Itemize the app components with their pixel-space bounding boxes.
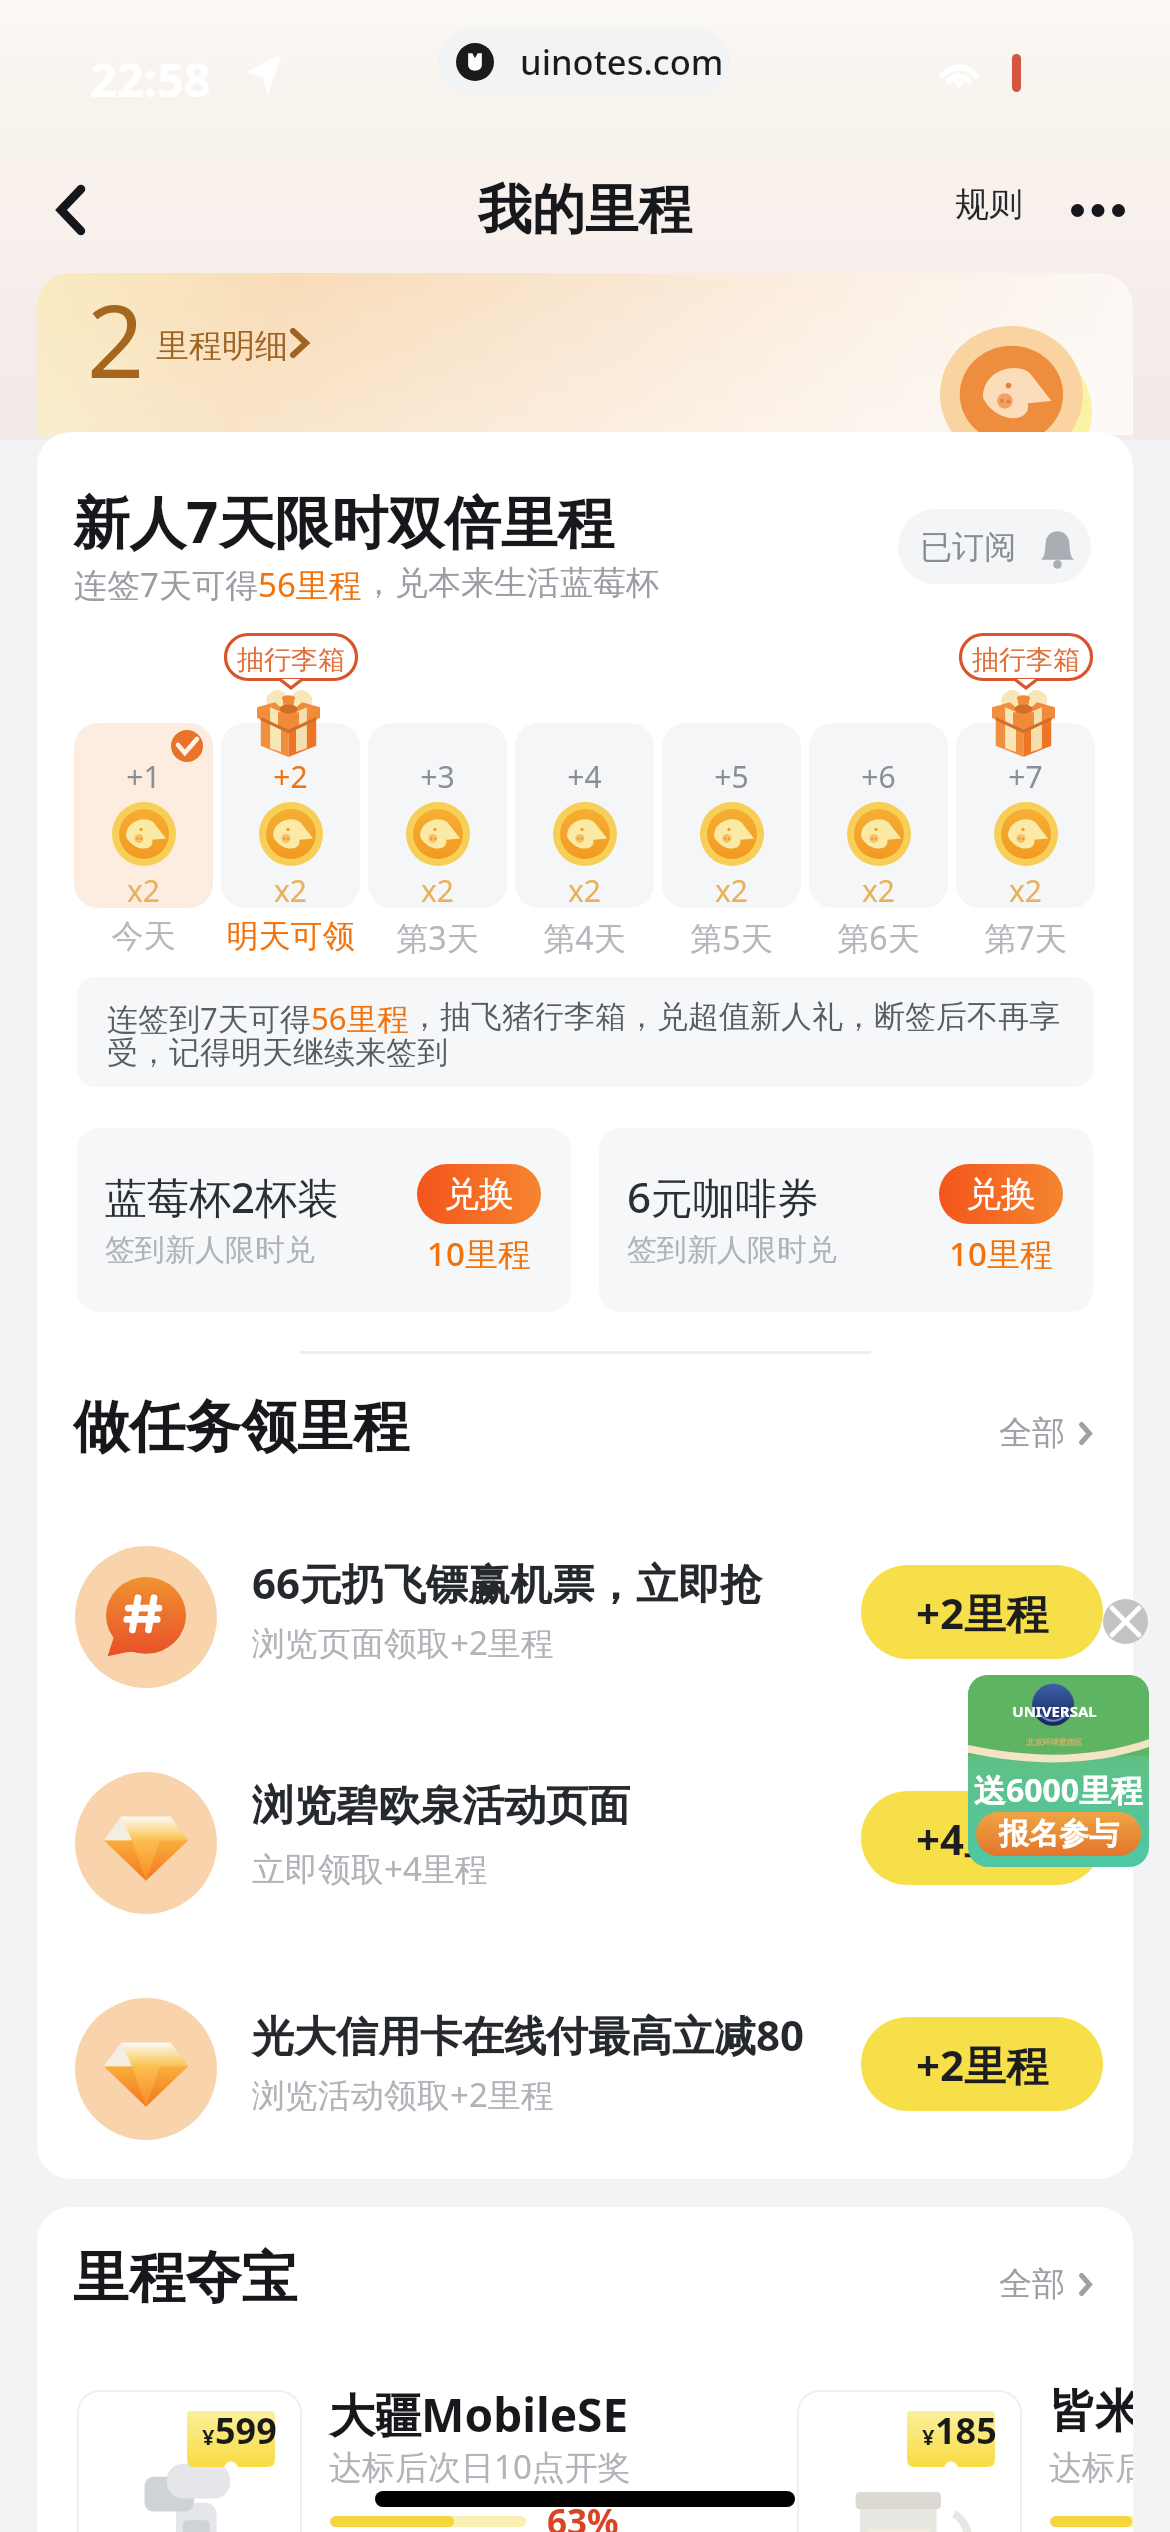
staticText: +7 (956, 756, 1095, 797)
staticText: 今天 (74, 916, 213, 956)
staticText: 北京环球度假区 (968, 1737, 1145, 1747)
button[interactable]: +4 (515, 723, 654, 908)
staticText: 浏览页面领取+2里程 (252, 1620, 554, 1665)
staticText: ¥ (202, 2421, 215, 2451)
staticText: 签到新人限时兑 (627, 1231, 837, 1269)
staticText: 第5天 (662, 916, 801, 960)
staticText: x2 (809, 870, 948, 908)
staticText: 明天可领 (221, 916, 360, 956)
button[interactable]: +6 (809, 723, 948, 908)
button[interactable]: 6元咖啡券 (599, 1128, 1093, 1312)
button[interactable]: 规则 (951, 177, 1027, 232)
staticText: 大疆MobileSE (329, 2383, 629, 2446)
staticText: 63% (547, 2498, 619, 2532)
button[interactable]: ¥ (77, 2390, 302, 2532)
staticText: +2里程 (916, 2036, 1049, 2093)
button[interactable]: 66元扔飞镖赢机票，立即抢 (37, 1546, 1133, 1688)
button[interactable]: +4里程 (861, 1791, 1103, 1885)
staticText: 连签到7天可得 (107, 997, 311, 1039)
staticText: 抽行李箱 (224, 643, 358, 677)
staticText: 里程夺宝 (73, 2243, 297, 2314)
staticText: ，抽飞猪行李箱，兑超值新人礼，断签后不再享 (409, 997, 1060, 1036)
staticText: 达标后次日10点开奖 (329, 2444, 631, 2489)
staticText: 兑换 (966, 1172, 1036, 1216)
staticText: +2里程 (916, 1584, 1049, 1641)
button[interactable]: ¥ (797, 2390, 1022, 2532)
button[interactable]: Back (31, 170, 111, 250)
staticText: ¥ (922, 2421, 935, 2451)
staticText: 送6000里程 (971, 1768, 1146, 1812)
staticText: 56里程 (311, 997, 409, 1039)
staticText: 10里程 (417, 1231, 541, 1276)
staticText: 已订阅 (920, 527, 1016, 567)
staticText: x2 (368, 870, 507, 908)
staticText: +1 (74, 756, 213, 797)
button[interactable]: 浏览碧欧泉活动页面 (37, 1772, 1133, 1914)
staticText: 10里程 (939, 1231, 1063, 1276)
staticText: x2 (515, 870, 654, 908)
staticText: 连签7天可得 (74, 562, 258, 607)
button[interactable]: 全部 (989, 2255, 1100, 2313)
button[interactable]: +1 (74, 723, 213, 908)
button[interactable]: 已订阅 (898, 509, 1091, 584)
staticText: +6 (809, 756, 948, 797)
button[interactable]: Close ad (1103, 1599, 1148, 1644)
staticText: 第6天 (809, 916, 948, 960)
staticText: 66元扔飞镖赢机票，立即抢 (252, 1554, 763, 1611)
staticText: x2 (662, 870, 801, 908)
staticText: x2 (221, 870, 360, 908)
staticText: 全部 (999, 1412, 1065, 1454)
staticText: +4 (515, 756, 654, 797)
staticText: 规则 (955, 183, 1023, 226)
staticText: +3 (368, 756, 507, 797)
staticText: +5 (662, 756, 801, 797)
staticText: 56里程 (258, 562, 362, 607)
staticText: 蓝莓杯2杯装 (105, 1168, 340, 1225)
staticText: 达标后次日10点开奖 (1049, 2444, 1133, 2489)
staticText: 22:58 (90, 47, 211, 111)
staticText: 我的里程 (478, 176, 692, 243)
staticText: 立即领取+4里程 (252, 1846, 488, 1891)
staticText: 抽行李箱 (959, 643, 1093, 677)
staticText: 签到新人限时兑 (105, 1231, 315, 1269)
button[interactable]: 蓝莓杯2杯装 (77, 1128, 571, 1312)
button[interactable]: +3 (368, 723, 507, 908)
staticText: +4里程 (916, 1810, 1049, 1867)
staticText: 第7天 (956, 916, 1095, 960)
staticText: 第3天 (368, 916, 507, 960)
button[interactable]: +5 (662, 723, 801, 908)
staticText: 第4天 (515, 916, 654, 960)
staticText: 浏览活动领取+2里程 (252, 2072, 554, 2117)
staticText: x2 (956, 870, 1095, 908)
staticText: 做任务领里程 (73, 1392, 409, 1463)
staticText: 新人7天限时双倍里程 (73, 483, 614, 560)
staticText: 受，记得明天继续来签到 (107, 1033, 448, 1072)
button[interactable]: 兑换 (417, 1164, 541, 1224)
button[interactable]: More options (1069, 186, 1127, 234)
staticText: x2 (74, 870, 213, 908)
staticText: 里程明细 (156, 325, 288, 367)
button[interactable]: +2里程 (861, 1565, 1103, 1659)
button[interactable]: +2 (221, 723, 360, 908)
staticText: 兑换 (444, 1172, 514, 1216)
staticText: +2 (221, 756, 360, 797)
button[interactable]: UNIVERSAL (968, 1675, 1149, 1867)
button[interactable]: 光大信用卡在线付最高立减80 (37, 1998, 1133, 2140)
staticText: 光大信用卡在线付最高立减80 (252, 2006, 805, 2063)
staticText: 599 (215, 2406, 277, 2455)
staticText: 全部 (999, 2263, 1065, 2305)
staticText: uinotes.com (520, 38, 724, 85)
button[interactable]: 全部 (989, 1404, 1100, 1462)
staticText: 浏览碧欧泉活动页面 (252, 1780, 630, 1833)
staticText: 6元咖啡券 (627, 1168, 820, 1225)
staticText: 报名参与 (999, 1815, 1119, 1853)
staticText: 2 (87, 273, 145, 407)
staticText: 皆米 (1049, 2383, 1133, 2441)
button[interactable]: 兑换 (939, 1164, 1063, 1224)
staticText: UNIVERSAL (968, 1701, 1145, 1721)
button[interactable]: +2里程 (861, 2017, 1103, 2111)
staticText: ，兑本来生活蓝莓杯 (362, 562, 659, 604)
button[interactable]: +7 (956, 723, 1095, 908)
button[interactable]: 2 (37, 273, 1133, 435)
staticText: 185 (935, 2406, 997, 2455)
